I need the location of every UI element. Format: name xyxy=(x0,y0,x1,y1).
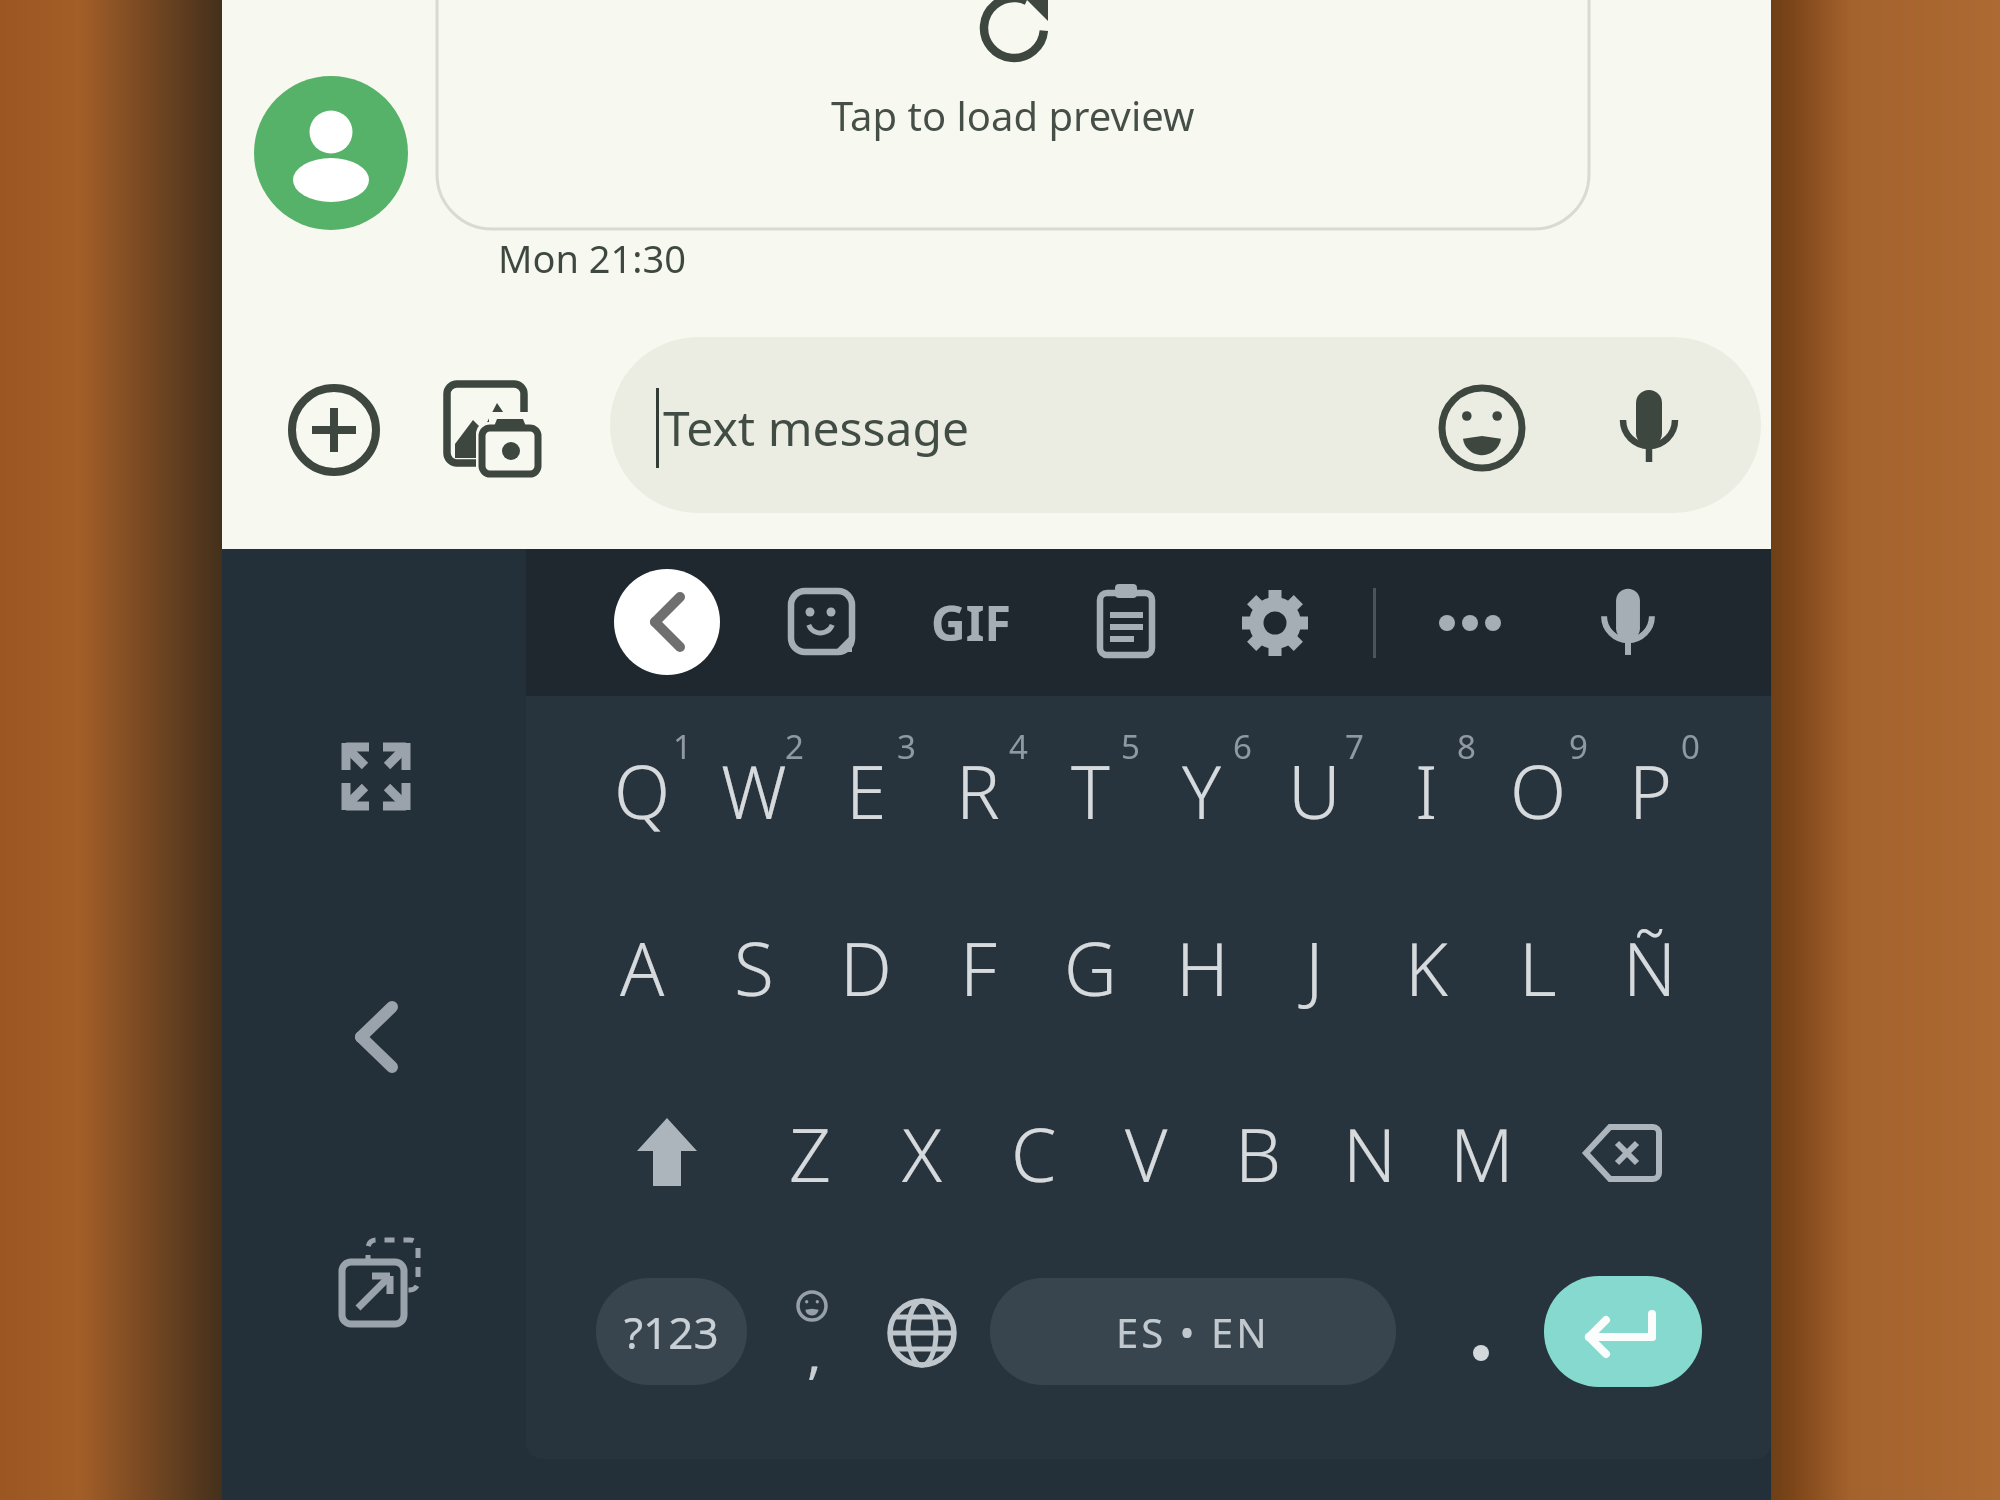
staticText: 5 xyxy=(1121,724,1140,768)
button[interactable] xyxy=(779,1278,847,1385)
button[interactable] xyxy=(880,1280,964,1387)
button[interactable]: E xyxy=(810,702,922,878)
button[interactable] xyxy=(290,386,378,474)
staticText: B xyxy=(1235,1104,1282,1203)
staticText: Mon 21:30 xyxy=(498,232,686,284)
staticText: Text message xyxy=(663,395,970,459)
button[interactable]: C xyxy=(978,1065,1090,1241)
button[interactable] xyxy=(925,580,1017,664)
button[interactable] xyxy=(611,1065,723,1241)
staticText: M xyxy=(1450,1104,1514,1203)
staticText: U xyxy=(1288,741,1341,840)
button[interactable]: V xyxy=(1090,1065,1202,1241)
button[interactable] xyxy=(1442,388,1522,468)
staticText: ?123 xyxy=(624,1302,719,1362)
button[interactable]: L xyxy=(1482,879,1594,1055)
button[interactable]: W xyxy=(698,702,810,878)
staticText: D xyxy=(840,918,892,1017)
button[interactable] xyxy=(1586,578,1670,666)
button[interactable]: S xyxy=(698,879,810,1055)
staticText: ES • EN xyxy=(1116,1305,1270,1359)
button[interactable] xyxy=(437,0,1589,230)
button[interactable]: Y xyxy=(1146,702,1258,878)
button[interactable] xyxy=(610,337,1761,513)
button[interactable]: N xyxy=(1314,1065,1426,1241)
staticText: 0 xyxy=(1681,724,1700,768)
staticText: P xyxy=(1629,741,1672,840)
button[interactable]: Q xyxy=(586,702,698,878)
button[interactable]: Ñ xyxy=(1594,879,1706,1055)
staticText: 9 xyxy=(1569,724,1588,768)
button[interactable] xyxy=(1566,1065,1678,1241)
button[interactable]: R xyxy=(922,702,1034,878)
button[interactable]: X xyxy=(866,1065,978,1241)
staticText: V xyxy=(1125,1104,1168,1203)
button[interactable]: G xyxy=(1034,879,1146,1055)
staticText: GIF xyxy=(931,590,1011,655)
staticText: , xyxy=(807,1315,822,1385)
button[interactable]: M xyxy=(1426,1065,1538,1241)
button[interactable] xyxy=(614,569,720,675)
button[interactable]: K xyxy=(1370,879,1482,1055)
staticText: Y xyxy=(1182,741,1222,840)
button[interactable] xyxy=(340,997,416,1077)
staticText: H xyxy=(1176,918,1229,1017)
button[interactable] xyxy=(1609,384,1689,480)
staticText: L xyxy=(1519,918,1557,1017)
button[interactable] xyxy=(596,1278,747,1385)
staticText: 6 xyxy=(1233,724,1252,768)
button[interactable]: I xyxy=(1370,702,1482,878)
staticText: Ñ xyxy=(1623,918,1677,1017)
button[interactable]: J xyxy=(1258,879,1370,1055)
staticText: 8 xyxy=(1457,724,1476,768)
button[interactable] xyxy=(780,580,864,664)
button[interactable]: A xyxy=(586,879,698,1055)
staticText: X xyxy=(902,1104,942,1203)
button[interactable]: O xyxy=(1482,702,1594,878)
button[interactable]: B xyxy=(1202,1065,1314,1241)
button[interactable] xyxy=(336,1244,420,1328)
staticText: 2 xyxy=(785,724,804,768)
staticText: T xyxy=(1071,741,1110,840)
staticText: Q xyxy=(614,741,670,840)
staticText: A xyxy=(620,918,665,1017)
button[interactable] xyxy=(1544,1276,1702,1387)
staticText: R xyxy=(956,741,1000,840)
button[interactable] xyxy=(336,736,416,816)
staticText: K xyxy=(1405,918,1448,1017)
button[interactable]: U xyxy=(1258,702,1370,878)
staticText: I xyxy=(1415,741,1438,840)
button[interactable]: P xyxy=(1594,702,1706,878)
staticText: Tap to load preview xyxy=(831,88,1195,142)
staticText: O xyxy=(1510,741,1566,840)
button[interactable] xyxy=(990,1278,1396,1385)
staticText: 3 xyxy=(897,724,916,768)
staticText: F xyxy=(960,918,997,1017)
staticText: 1 xyxy=(673,724,692,768)
staticText: C xyxy=(1011,1104,1057,1203)
button[interactable]: F xyxy=(922,879,1034,1055)
button[interactable]: T xyxy=(1034,702,1146,878)
button[interactable]: H xyxy=(1146,879,1258,1055)
staticText: G xyxy=(1064,918,1117,1017)
staticText: E xyxy=(846,741,887,840)
button[interactable] xyxy=(1233,580,1317,664)
staticText: N xyxy=(1343,1104,1397,1203)
button[interactable] xyxy=(1426,583,1514,663)
staticText: J xyxy=(1305,918,1324,1017)
button[interactable]: D xyxy=(810,879,922,1055)
button[interactable]: Z xyxy=(754,1065,866,1241)
button[interactable] xyxy=(440,380,548,488)
staticText: Z xyxy=(789,1104,831,1203)
staticText: 4 xyxy=(1009,724,1028,768)
staticText: W xyxy=(721,741,787,840)
button[interactable] xyxy=(1447,1278,1515,1385)
staticText: 7 xyxy=(1345,724,1364,768)
button[interactable] xyxy=(1084,580,1168,664)
staticText: S xyxy=(734,918,774,1017)
